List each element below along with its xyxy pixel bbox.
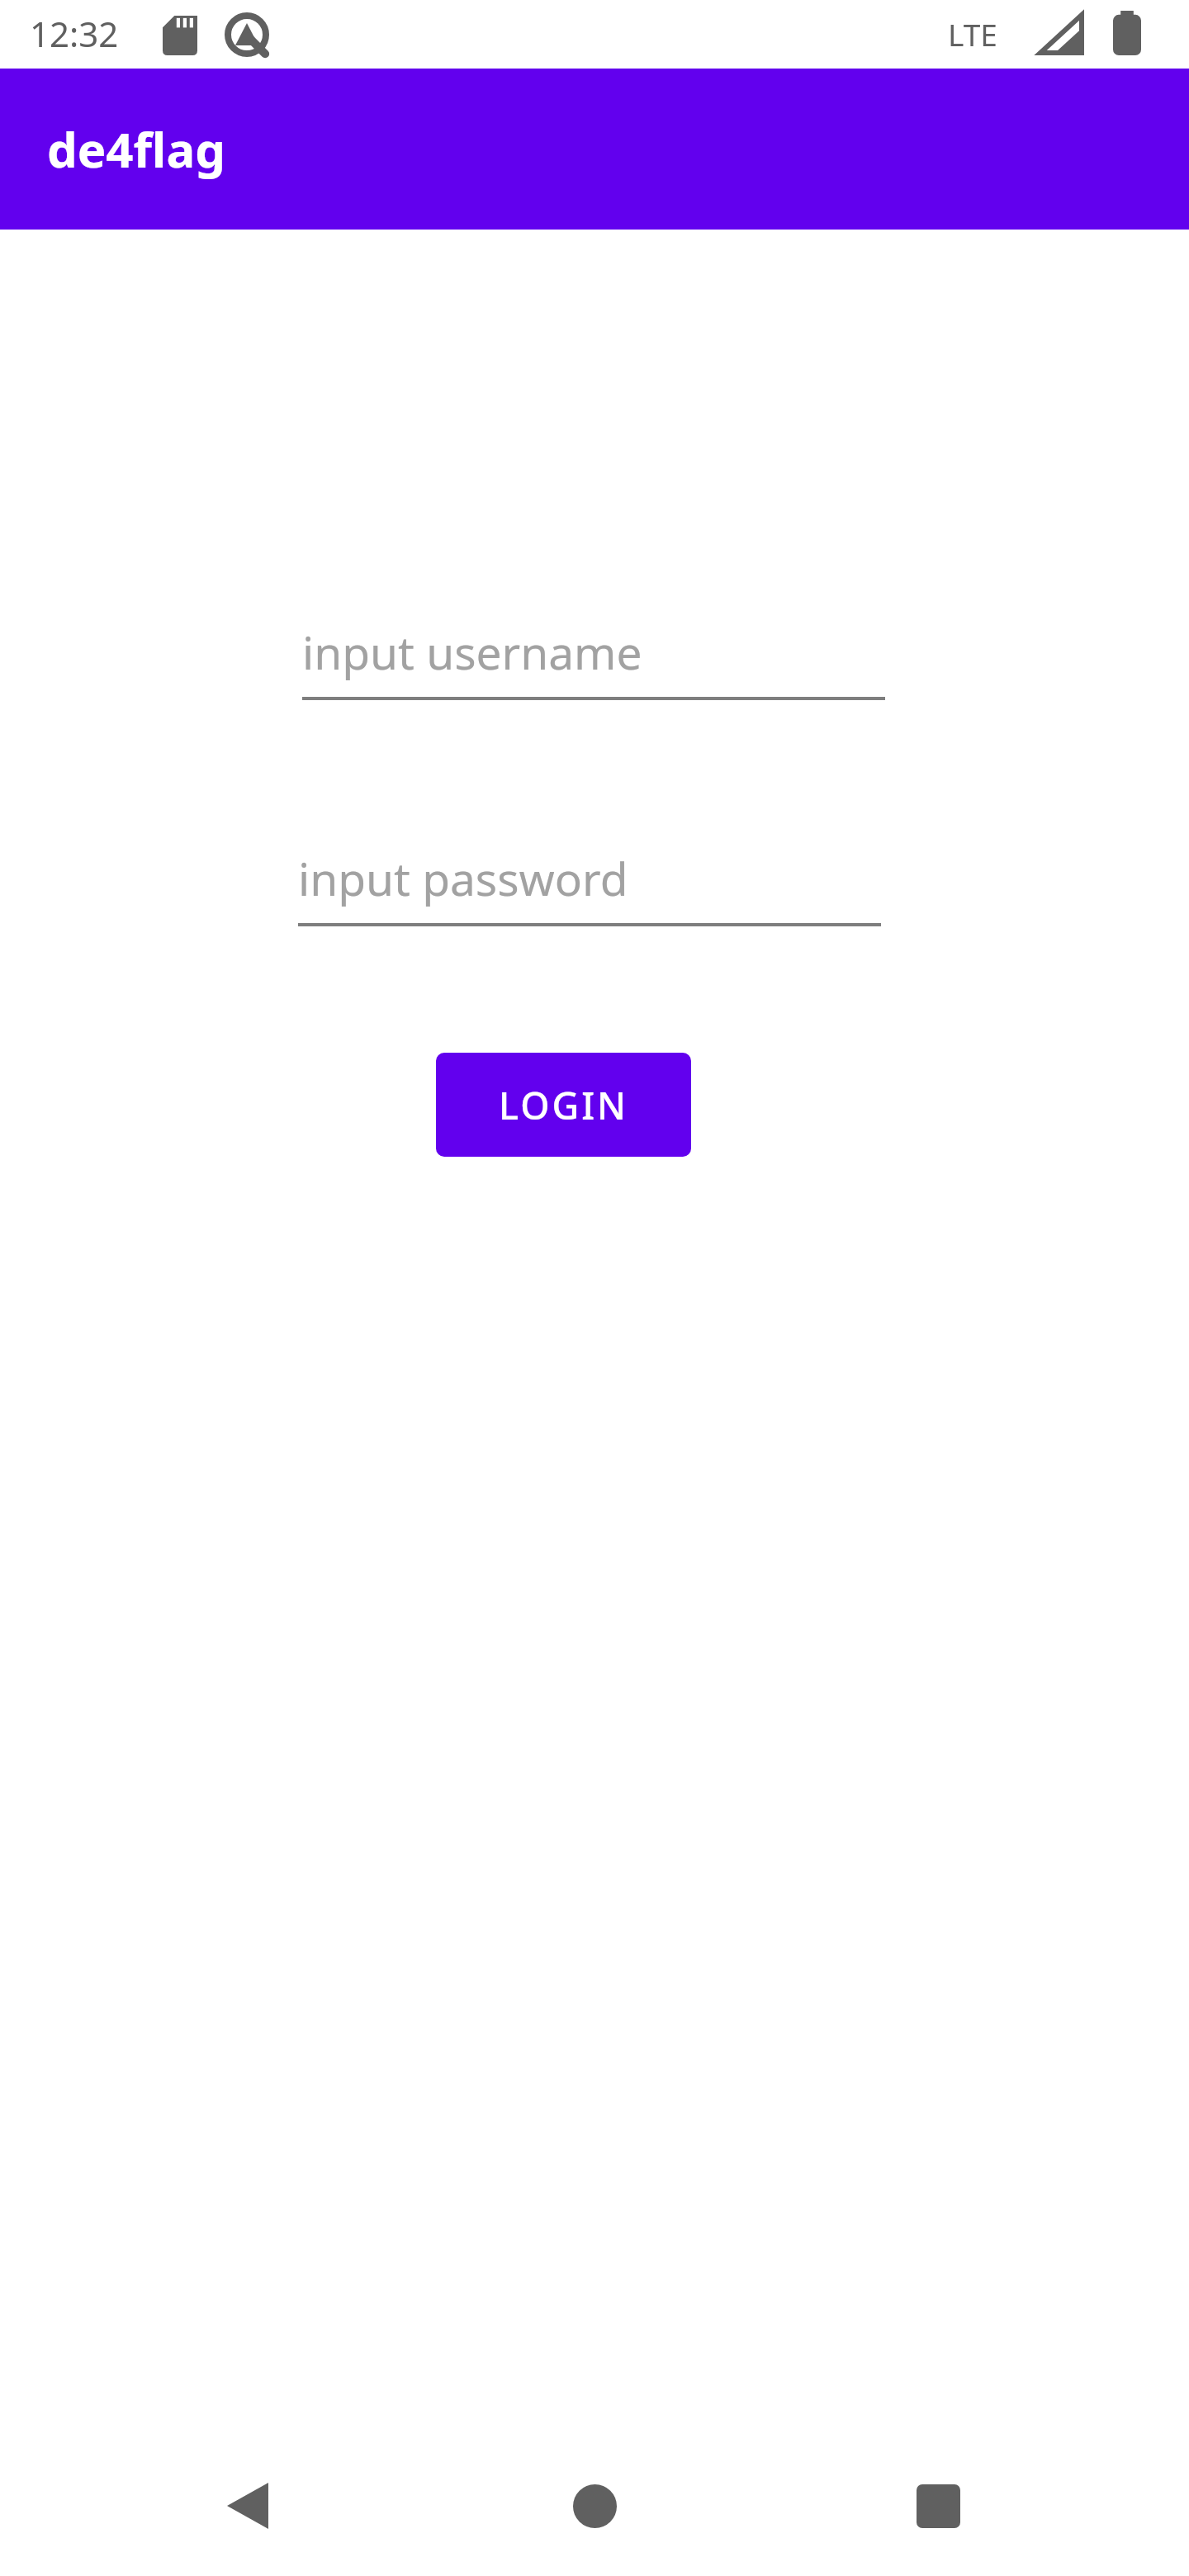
button[interactable]: Recent apps <box>880 2448 996 2564</box>
staticText: input username <box>302 621 642 683</box>
staticText: de4flag <box>47 116 225 182</box>
button[interactable]: LOGIN <box>436 1053 691 1157</box>
staticText: 12:32 <box>30 10 119 57</box>
button[interactable]: Back <box>190 2448 306 2564</box>
staticText: input password <box>298 847 628 909</box>
button[interactable]: Home <box>537 2448 652 2564</box>
staticText: LOGIN <box>499 1080 628 1130</box>
staticText: LTE <box>948 13 997 54</box>
button[interactable]: input username <box>302 616 885 700</box>
button[interactable]: input password <box>298 842 881 926</box>
